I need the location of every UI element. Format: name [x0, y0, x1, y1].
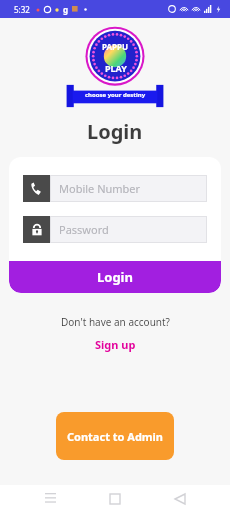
staticText: 5:32 [14, 4, 30, 15]
staticText: Mobile Number [59, 181, 141, 196]
staticText: Sign up [95, 337, 136, 352]
staticText: Contact to Admin [67, 429, 163, 444]
button[interactable]: Sign up [89, 335, 142, 354]
staticText: choose your destiny [85, 91, 146, 99]
button[interactable]: Back [165, 485, 195, 512]
button[interactable]: Mobile Number [23, 175, 207, 202]
staticText: Don't have an account? [61, 315, 170, 329]
staticText: Password [59, 222, 109, 237]
staticText: g [63, 4, 69, 15]
staticText: PAPPU [102, 41, 129, 52]
button[interactable]: Recent apps [35, 485, 65, 512]
button[interactable]: Password [23, 216, 207, 243]
staticText: PLAY [105, 62, 127, 74]
button[interactable]: Login [9, 261, 221, 293]
other: Password [23, 216, 50, 243]
other: Mobile Number [23, 175, 50, 202]
button[interactable]: Contact to Admin [56, 412, 174, 460]
button[interactable]: Home [100, 485, 130, 512]
staticText: Login [97, 268, 133, 286]
staticText: Login [87, 118, 143, 145]
